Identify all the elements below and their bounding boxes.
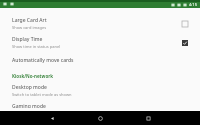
button[interactable]: Back [45, 111, 59, 125]
button[interactable]: Checked [180, 38, 190, 48]
button[interactable]: Desktop mode [0, 81, 200, 100]
button[interactable]: Large Card Art [0, 14, 200, 33]
button[interactable]: Gaming mode [0, 100, 200, 111]
button[interactable]: Home [93, 111, 107, 125]
button[interactable]: Recent apps [141, 111, 155, 125]
staticText: Show card images [12, 25, 47, 30]
button[interactable]: Automatically move cards [0, 52, 200, 69]
staticText: Large Card Art [12, 17, 47, 24]
button[interactable]: Unchecked [180, 19, 190, 29]
staticText: Desktop mode [12, 84, 47, 91]
staticText: Automatically move cards [12, 57, 74, 64]
staticText: Display Time [12, 36, 43, 43]
staticText: Gaming mode [12, 103, 46, 108]
button[interactable]: Display Time [0, 33, 200, 52]
staticText: Show time in status panel [12, 44, 61, 49]
staticText: 4:15 [189, 2, 197, 7]
staticText: Switch to tablet mode as shown [12, 92, 72, 97]
staticText: Kiosk/No-network [12, 73, 54, 79]
